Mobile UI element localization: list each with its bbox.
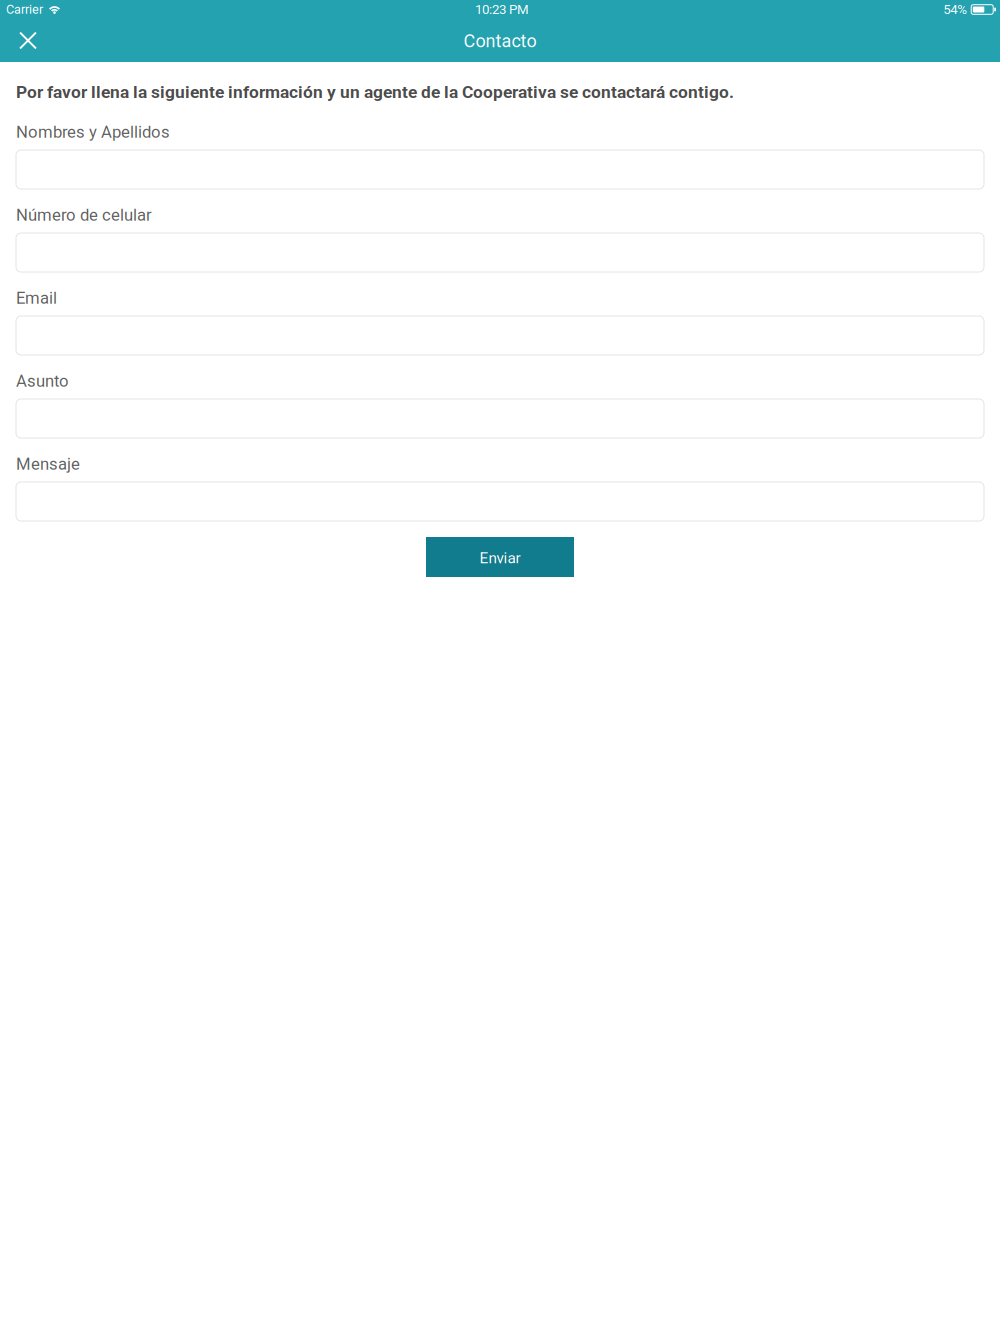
button[interactable]: Mensaje [16, 482, 984, 521]
staticText: Número de celular [16, 205, 152, 225]
staticText: Por favor llena la siguiente información… [16, 82, 734, 102]
button[interactable]: Enviar [426, 537, 574, 577]
button[interactable]: Email [16, 316, 984, 355]
staticText: 10:23 PM [475, 2, 529, 17]
button[interactable]: Número de celular [16, 233, 984, 272]
button[interactable]: Cerrar [9, 22, 47, 62]
staticText: Carrier [6, 2, 43, 17]
staticText: Nombres y Apellidos [16, 122, 170, 142]
staticText: Contacto [463, 30, 536, 52]
staticText: Asunto [16, 371, 69, 391]
button[interactable]: Nombres y Apellidos [16, 150, 984, 189]
button[interactable]: Asunto [16, 399, 984, 438]
staticText: Email [16, 288, 57, 308]
staticText: Mensaje [16, 454, 80, 474]
staticText: 54% [943, 2, 967, 17]
staticText: Enviar [479, 549, 520, 567]
